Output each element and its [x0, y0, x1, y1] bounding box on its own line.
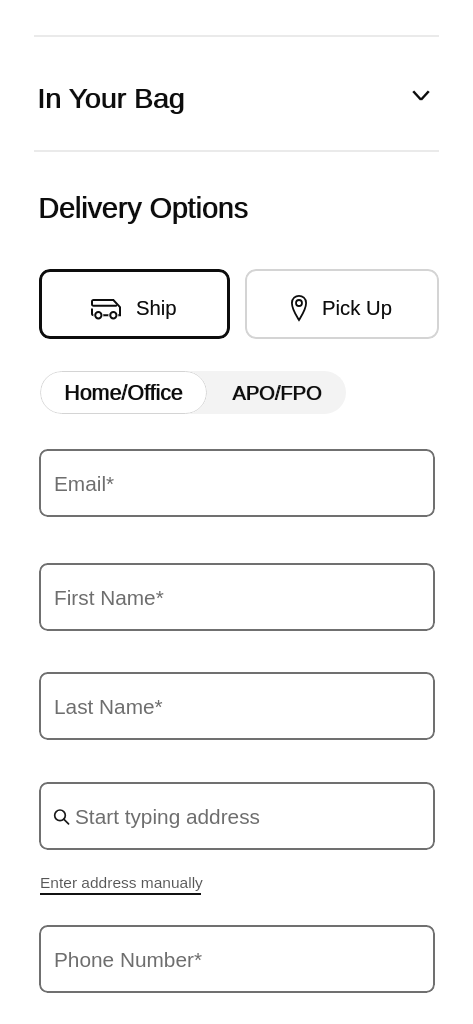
staticText: Pick Up: [322, 297, 392, 320]
staticText: Home/Office: [64, 381, 183, 405]
button[interactable]: Last Name*: [39, 672, 435, 740]
staticText: Pick Up: [322, 297, 392, 320]
staticText: Home/Office: [65, 381, 184, 405]
staticText: First Name*: [54, 586, 164, 609]
button[interactable]: First Name*: [39, 563, 435, 631]
staticText: Start typing address: [75, 805, 260, 828]
staticText: Phone Number*: [54, 948, 202, 971]
other: Collapse In Your Bag: [412, 90, 430, 101]
button[interactable]: APO/FPO: [207, 371, 346, 414]
button[interactable]: Start typing address: [39, 782, 435, 850]
button[interactable]: Pick Up: [245, 269, 439, 339]
button[interactable]: Home/Office: [40, 371, 207, 414]
button[interactable]: Email*: [39, 449, 435, 517]
staticText: Delivery Options: [38, 192, 248, 224]
staticText: Email*: [54, 472, 115, 495]
staticText: Ship: [136, 297, 177, 320]
button[interactable]: Ship: [39, 269, 230, 339]
button[interactable]: Enter address manually: [40, 874, 203, 891]
staticText: APO/FPO: [232, 382, 322, 404]
staticText: Last Name*: [54, 695, 163, 718]
staticText: Ship: [136, 297, 177, 320]
staticText: In Your Bag: [37, 82, 185, 114]
button[interactable]: Phone Number*: [39, 925, 435, 993]
button[interactable]: In Your Bag: [0, 36, 473, 150]
staticText: Enter address manually: [40, 874, 203, 891]
staticText: In Your Bag: [38, 82, 186, 114]
staticText: APO/FPO: [233, 382, 323, 404]
staticText: Delivery Options: [39, 192, 249, 224]
